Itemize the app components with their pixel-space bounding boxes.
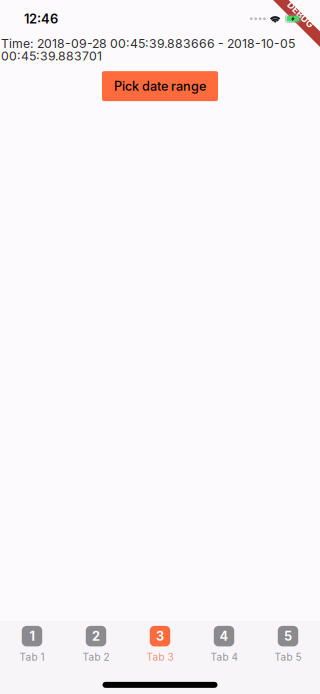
staticText: Tab 2 (82, 651, 109, 663)
staticText: 3 (156, 628, 164, 644)
staticText: Tab 5 (274, 651, 301, 663)
staticText: Tab 1 (19, 651, 44, 663)
button[interactable]: 5 (256, 622, 320, 668)
staticText: Tab 3 (146, 651, 173, 663)
button[interactable]: 1 (0, 622, 64, 668)
staticText: 12:46 (24, 11, 58, 26)
staticText: Tab 4 (210, 651, 237, 663)
staticText: 2 (92, 628, 100, 644)
staticText: Time: 2018-09-28 00:45:39.883666 - 2018-… (1, 37, 295, 62)
staticText: 1 (29, 628, 34, 644)
staticText: 4 (219, 628, 228, 644)
staticText: 5 (284, 628, 292, 644)
button[interactable]: 4 (192, 622, 256, 668)
button[interactable]: 2 (64, 622, 128, 668)
staticText: DEBUG (284, 9, 317, 20)
button[interactable]: 3 (128, 622, 192, 668)
button[interactable]: Pick date range (102, 71, 218, 101)
staticText: Pick date range (114, 78, 206, 94)
